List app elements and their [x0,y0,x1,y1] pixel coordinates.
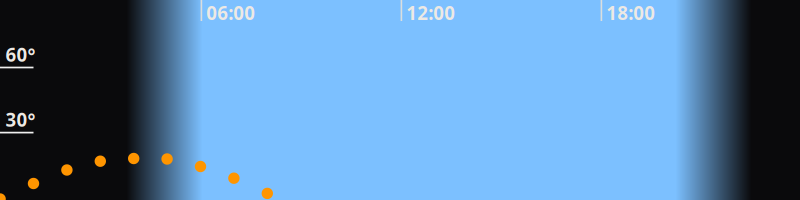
staticText: 06:00 [206,0,255,25]
staticText: 30° [5,107,35,133]
staticText: 12:00 [406,0,455,25]
staticText: 60° [5,42,35,68]
staticText: 18:00 [606,0,655,25]
